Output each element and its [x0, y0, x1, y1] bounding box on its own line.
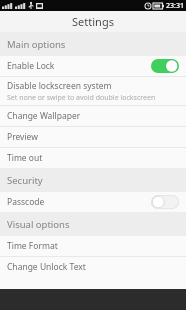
staticText: Set none or swipe to avoid double locksc… — [7, 93, 156, 103]
staticText: Settings — [0, 14, 186, 29]
staticText: Enable Lock — [7, 60, 55, 72]
staticText: Time out — [7, 152, 43, 164]
button[interactable]: Toggle off — [151, 195, 179, 209]
staticText: Preview — [7, 131, 38, 143]
button[interactable]: Change Wallpaper — [0, 106, 186, 126]
staticText: Time Format — [7, 240, 58, 252]
button[interactable]: Passcode — [0, 192, 186, 212]
staticText: Change Wallpaper — [7, 110, 81, 122]
button[interactable]: Enable Lock — [0, 56, 186, 76]
staticText: Change Unlock Text — [7, 261, 86, 273]
staticText: Disable lockscreen system — [7, 80, 112, 92]
button[interactable]: Change Unlock Text — [0, 257, 186, 277]
button[interactable]: Time Format — [0, 236, 186, 256]
button[interactable]: Disable lockscreen system — [0, 77, 186, 105]
staticText: Security — [7, 174, 43, 187]
staticText: Main options — [7, 38, 66, 51]
staticText: Visual options — [7, 218, 70, 231]
button[interactable]: Preview — [0, 127, 186, 147]
staticText: Passcode — [7, 196, 45, 208]
button[interactable]: Toggle on — [151, 59, 179, 73]
button[interactable]: Time out — [0, 148, 186, 168]
staticText: 23:31 — [166, 1, 184, 11]
